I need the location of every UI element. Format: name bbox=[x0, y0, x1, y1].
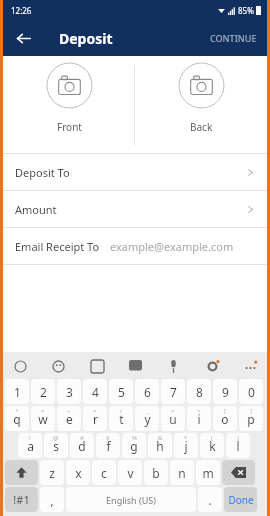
staticText: 8 bbox=[196, 384, 203, 400]
button[interactable]: 5 bbox=[109, 379, 133, 404]
button[interactable]: k bbox=[200, 433, 224, 458]
button[interactable]: English (US) bbox=[66, 487, 196, 512]
button[interactable]: r bbox=[83, 406, 107, 431]
staticText: 1 bbox=[14, 384, 21, 400]
staticText: , bbox=[50, 492, 54, 508]
staticText: k bbox=[209, 438, 216, 454]
button[interactable]: Keyboard tool 2 bbox=[86, 355, 108, 377]
staticText: × bbox=[41, 407, 45, 415]
button[interactable]: y bbox=[135, 406, 159, 431]
staticText: 2 bbox=[40, 384, 47, 400]
staticText: !#1 bbox=[13, 492, 30, 507]
staticText: % bbox=[132, 434, 137, 442]
button[interactable]: x bbox=[66, 460, 90, 485]
staticText: i bbox=[197, 411, 201, 427]
staticText: j bbox=[184, 438, 188, 454]
button[interactable]: 2 bbox=[31, 379, 55, 404]
button[interactable]: e bbox=[57, 406, 81, 431]
button[interactable]: 8 bbox=[187, 379, 211, 404]
button[interactable]: Shift bbox=[5, 460, 38, 485]
staticText: x bbox=[75, 465, 82, 481]
button[interactable]: , bbox=[40, 487, 64, 512]
staticText: Deposit bbox=[59, 29, 113, 48]
staticText: # bbox=[80, 434, 84, 442]
button[interactable]: w bbox=[31, 406, 55, 431]
staticText: ] bbox=[250, 407, 252, 415]
button[interactable]: . bbox=[198, 487, 222, 512]
staticText: d bbox=[78, 438, 86, 454]
button[interactable]: l bbox=[226, 433, 250, 458]
button[interactable]: s bbox=[44, 433, 68, 458]
button[interactable]: 9 bbox=[213, 379, 237, 404]
staticText: = bbox=[93, 407, 97, 415]
staticText: English (US) bbox=[106, 494, 156, 506]
button[interactable]: Email Receipt To bbox=[3, 228, 267, 265]
button[interactable]: Keyboard tool 0 bbox=[9, 355, 31, 377]
button[interactable]: n bbox=[170, 460, 194, 485]
staticText: & bbox=[158, 434, 163, 442]
button[interactable]: Back bbox=[11, 26, 35, 50]
button[interactable]: Amount bbox=[3, 191, 267, 228]
button[interactable]: 0 bbox=[239, 379, 263, 404]
button[interactable]: Keyboard tool 1 bbox=[47, 355, 69, 377]
button[interactable]: Back bbox=[135, 56, 267, 153]
staticText: ( bbox=[211, 434, 213, 442]
staticText: t bbox=[119, 411, 124, 427]
staticText: Deposit To bbox=[15, 165, 70, 180]
button[interactable]: o bbox=[213, 406, 237, 431]
button[interactable]: v bbox=[118, 460, 142, 485]
staticText: @ bbox=[53, 434, 59, 442]
button[interactable]: Keyboard tool 3 bbox=[124, 355, 146, 377]
staticText: Done bbox=[228, 493, 254, 507]
button[interactable]: g bbox=[122, 433, 146, 458]
staticText: n bbox=[178, 465, 186, 481]
staticText: v bbox=[127, 465, 134, 481]
button[interactable]: !#1 bbox=[5, 487, 38, 512]
button[interactable]: Keyboard tool 6 bbox=[239, 355, 261, 377]
button[interactable]: Keyboard tool 4 bbox=[162, 355, 184, 377]
button[interactable]: Front bbox=[3, 56, 135, 153]
button[interactable]: Backspace bbox=[222, 460, 255, 485]
button[interactable]: u bbox=[161, 406, 185, 431]
button[interactable]: 1 bbox=[5, 379, 29, 404]
button[interactable]: p bbox=[239, 406, 263, 431]
staticText: > bbox=[197, 407, 201, 415]
button[interactable]: i bbox=[187, 406, 211, 431]
button[interactable]: z bbox=[40, 460, 64, 485]
staticText: ÷ bbox=[67, 407, 71, 415]
button[interactable]: j bbox=[174, 433, 198, 458]
button[interactable]: Done bbox=[224, 487, 257, 512]
staticText: Front bbox=[57, 120, 82, 134]
staticText: Back bbox=[190, 120, 213, 134]
staticText: r bbox=[93, 411, 98, 427]
button[interactable]: 7 bbox=[161, 379, 185, 404]
staticText: ! bbox=[29, 434, 31, 442]
button[interactable]: d bbox=[70, 433, 94, 458]
staticText: w bbox=[38, 411, 48, 427]
button[interactable]: Keyboard tool 5 bbox=[201, 355, 223, 377]
button[interactable]: t bbox=[109, 406, 133, 431]
button[interactable]: h bbox=[148, 433, 172, 458]
staticText: 5 bbox=[118, 384, 125, 400]
button[interactable]: 6 bbox=[135, 379, 159, 404]
staticText: h bbox=[156, 438, 164, 454]
button[interactable]: 3 bbox=[57, 379, 81, 404]
staticText: c bbox=[101, 465, 107, 481]
staticText: [ bbox=[224, 407, 226, 415]
button[interactable]: a bbox=[18, 433, 42, 458]
button[interactable]: f bbox=[96, 433, 120, 458]
button[interactable]: q bbox=[5, 406, 29, 431]
button[interactable]: 4 bbox=[83, 379, 107, 404]
button[interactable]: m bbox=[196, 460, 220, 485]
staticText: 85% bbox=[238, 5, 254, 16]
button[interactable]: CONTINUE bbox=[200, 24, 267, 52]
staticText: m bbox=[202, 465, 214, 481]
button[interactable]: b bbox=[144, 460, 168, 485]
staticText: s bbox=[53, 438, 59, 454]
staticText: 6 bbox=[144, 384, 151, 400]
staticText: + bbox=[15, 407, 19, 415]
button[interactable]: c bbox=[92, 460, 116, 485]
button[interactable]: Deposit To bbox=[3, 154, 267, 191]
staticText: < bbox=[171, 407, 175, 415]
staticText: e bbox=[66, 411, 73, 427]
